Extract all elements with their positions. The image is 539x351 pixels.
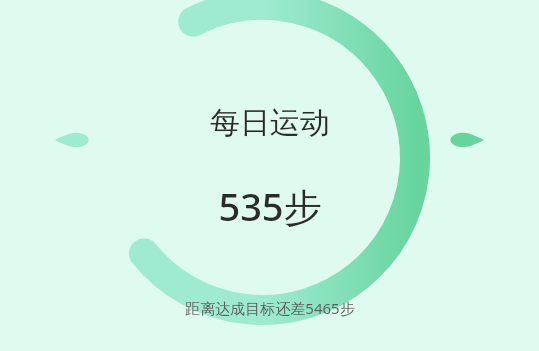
staticText: 距离达成目标还差5465步 (185, 298, 355, 318)
button[interactable]: 距离达成目标还差5465步 (177, 296, 363, 320)
staticText: 每日运动 (210, 104, 330, 142)
staticText: 535步 (218, 180, 322, 232)
button[interactable]: 每日运动 (198, 104, 342, 232)
